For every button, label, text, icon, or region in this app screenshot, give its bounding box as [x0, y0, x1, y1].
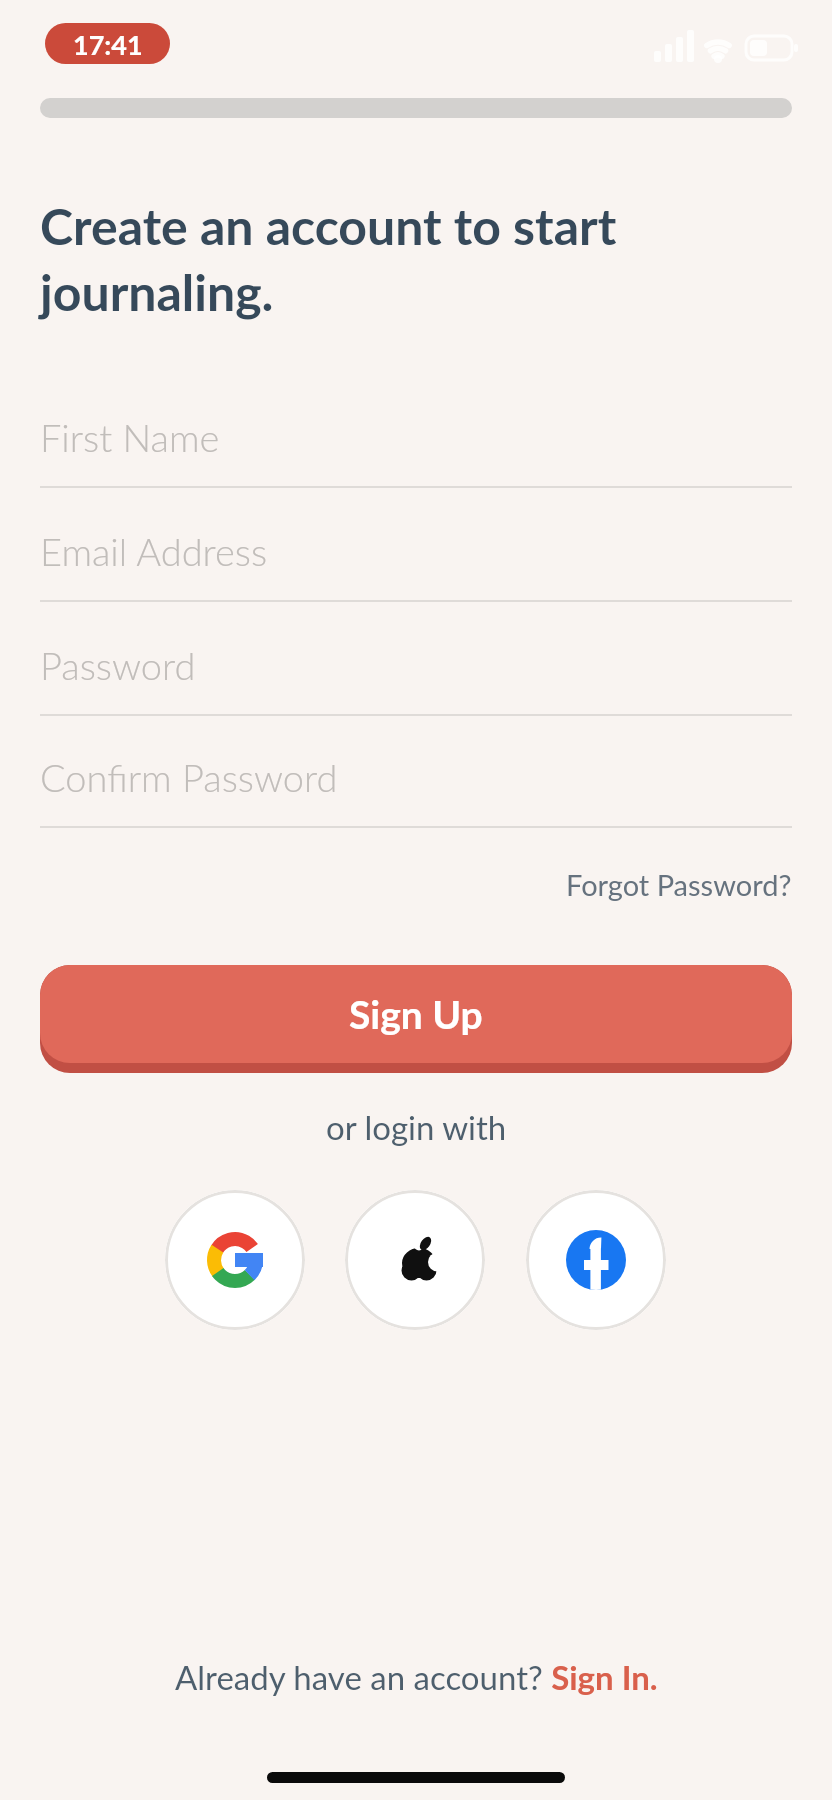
button[interactable]: Email Address [40, 494, 792, 608]
button[interactable]: Confirm Password [40, 720, 792, 834]
staticText: Email Address [40, 528, 268, 574]
staticText: Forgot Password? [566, 867, 792, 902]
staticText: Password [40, 642, 196, 688]
staticText: Already have an account? Sign In. [175, 1657, 658, 1697]
button[interactable] [345, 1190, 485, 1330]
button[interactable]: Forgot Password? [492, 854, 792, 914]
button[interactable] [165, 1190, 305, 1330]
staticText: Create an account to start journaling. [40, 196, 617, 322]
staticText: First Name [40, 414, 220, 460]
staticText: Confirm Password [40, 754, 338, 800]
staticText: or login with [326, 1107, 507, 1147]
button[interactable]: Sign Up [40, 965, 792, 1073]
staticText: 17:41 [73, 28, 143, 60]
button[interactable]: Already have an account? Sign In. [0, 1642, 832, 1712]
button[interactable]: First Name [40, 380, 792, 494]
button[interactable]: Password [40, 608, 792, 722]
staticText: Sign Up [349, 991, 483, 1038]
button[interactable] [526, 1190, 666, 1330]
